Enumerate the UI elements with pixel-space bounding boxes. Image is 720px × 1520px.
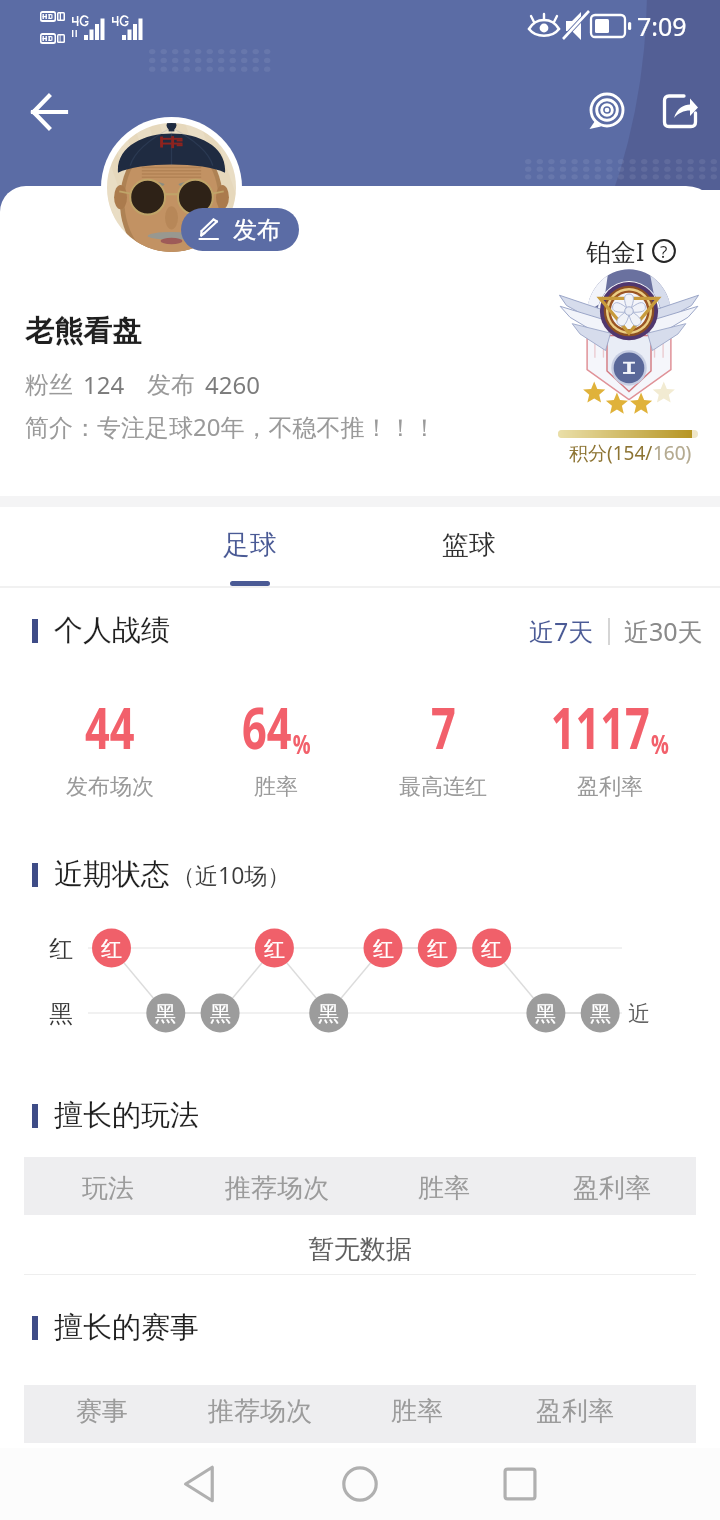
staticText: 老熊看盘 bbox=[25, 313, 141, 350]
staticText: 黑 bbox=[210, 1001, 231, 1027]
staticText: 铂金I bbox=[586, 234, 645, 268]
staticText: % bbox=[651, 726, 669, 761]
staticText: （近10场） bbox=[172, 859, 291, 890]
button[interactable]: Back bbox=[160, 1448, 240, 1520]
staticText: 暂无数据 bbox=[308, 1233, 412, 1266]
staticText: 篮球 bbox=[442, 528, 496, 562]
staticText: 近7天 bbox=[529, 614, 594, 648]
staticText: 1117 bbox=[551, 688, 650, 766]
button[interactable]: Help bbox=[652, 239, 676, 263]
staticText: 红 bbox=[101, 936, 122, 962]
staticText: 胜率 bbox=[254, 773, 298, 801]
staticText: 7:09 bbox=[637, 9, 687, 43]
staticText: 发布 bbox=[147, 370, 195, 400]
staticText: 7 bbox=[431, 688, 456, 766]
button[interactable]: Recents bbox=[480, 1448, 560, 1520]
staticText: 黑 bbox=[535, 1001, 556, 1027]
staticText: 124 bbox=[83, 368, 125, 401]
staticText: 近 bbox=[628, 1000, 650, 1028]
staticText: ? bbox=[660, 240, 668, 263]
staticText: 4260 bbox=[205, 368, 260, 401]
button[interactable]: Back bbox=[20, 82, 80, 142]
staticText: 推荐场次 bbox=[225, 1172, 329, 1205]
staticText: 黑 bbox=[590, 1001, 611, 1027]
staticText: 红 bbox=[427, 936, 448, 962]
staticText: 简介：专注足球20年，不稳不推！！！ bbox=[25, 410, 437, 443]
staticText: 赛事 bbox=[76, 1395, 128, 1428]
staticText: % bbox=[293, 726, 311, 761]
staticText: 红 bbox=[481, 936, 502, 962]
staticText: 足球 bbox=[223, 528, 277, 562]
staticText: 64 bbox=[242, 688, 292, 766]
button[interactable]: Share bbox=[651, 82, 709, 140]
button[interactable]: 足球 bbox=[200, 522, 300, 568]
staticText: 发布 bbox=[233, 215, 281, 245]
staticText: 近30天 bbox=[624, 614, 703, 648]
staticText: 黑 bbox=[318, 1001, 339, 1027]
staticText: 粉丝 bbox=[25, 370, 73, 400]
staticText: 黑 bbox=[155, 1001, 176, 1027]
staticText: 发布场次 bbox=[66, 773, 154, 801]
staticText: 胜率 bbox=[418, 1172, 470, 1205]
staticText: 玩法 bbox=[82, 1172, 134, 1205]
staticText: 盈利率 bbox=[536, 1395, 614, 1428]
staticText: 个人战绩 bbox=[54, 612, 170, 649]
staticText: 红 bbox=[373, 936, 394, 962]
button[interactable]: 发布 bbox=[181, 208, 299, 251]
staticText: 红 bbox=[49, 934, 73, 964]
button[interactable]: 篮球 bbox=[419, 522, 519, 568]
button[interactable]: Home bbox=[320, 1448, 400, 1520]
staticText: 擅长的赛事 bbox=[54, 1309, 199, 1346]
staticText: 盈利率 bbox=[573, 1172, 651, 1205]
staticText: 红 bbox=[264, 936, 285, 962]
button[interactable]: 近30天 bbox=[622, 610, 705, 652]
button[interactable]: 近7天 bbox=[527, 610, 596, 652]
button[interactable]: Focus bbox=[578, 82, 636, 140]
staticText: 推荐场次 bbox=[208, 1395, 312, 1428]
staticText: 盈利率 bbox=[577, 773, 643, 801]
staticText: 胜率 bbox=[391, 1395, 443, 1428]
staticText: 积分(154/ bbox=[569, 440, 653, 466]
staticText: 160) bbox=[653, 440, 692, 466]
staticText: 黑 bbox=[49, 999, 73, 1029]
staticText: 最高连红 bbox=[399, 773, 487, 801]
staticText: 44 bbox=[85, 688, 135, 766]
staticText: 擅长的玩法 bbox=[54, 1097, 199, 1134]
staticText: 近期状态 bbox=[54, 856, 170, 893]
